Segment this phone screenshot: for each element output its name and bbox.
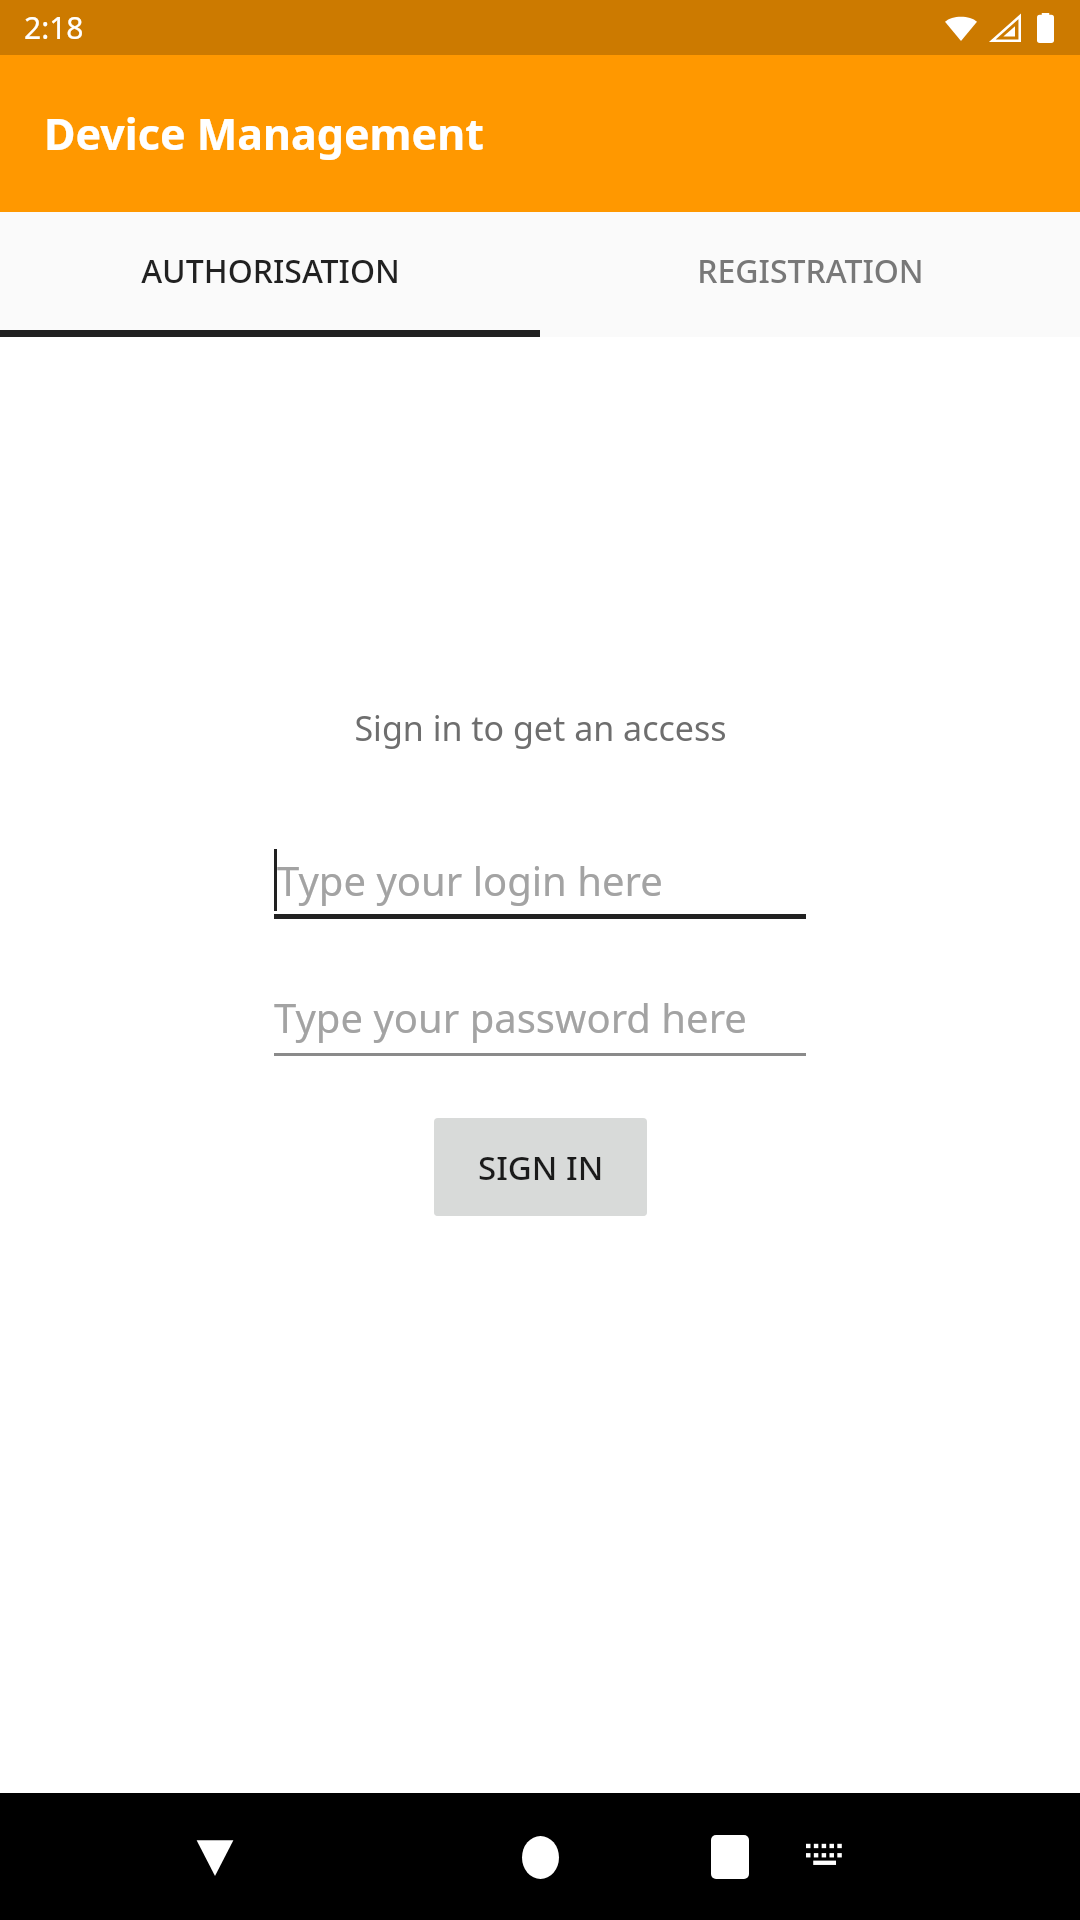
staticText: Device Management bbox=[44, 104, 484, 163]
button[interactable]: Recent apps bbox=[690, 1817, 770, 1897]
button[interactable]: REGISTRATION bbox=[540, 212, 1080, 330]
button[interactable]: Home bbox=[498, 1815, 582, 1899]
button[interactable]: Type your password here bbox=[274, 978, 806, 1056]
button[interactable]: Type your login here bbox=[274, 841, 806, 919]
staticText: AUTHORISATION bbox=[141, 249, 400, 293]
staticText: 2:18 bbox=[24, 7, 84, 48]
button[interactable]: AUTHORISATION bbox=[0, 212, 540, 330]
button[interactable]: Switch keyboard bbox=[790, 1822, 860, 1892]
button[interactable]: SIGN IN bbox=[434, 1118, 647, 1216]
staticText: Sign in to get an access bbox=[354, 705, 727, 751]
staticText: SIGN IN bbox=[478, 1145, 604, 1190]
staticText: Type your password here bbox=[274, 990, 747, 1044]
staticText: REGISTRATION bbox=[697, 249, 924, 293]
button[interactable]: Back bbox=[175, 1817, 255, 1897]
staticText: Type your login here bbox=[277, 853, 663, 907]
